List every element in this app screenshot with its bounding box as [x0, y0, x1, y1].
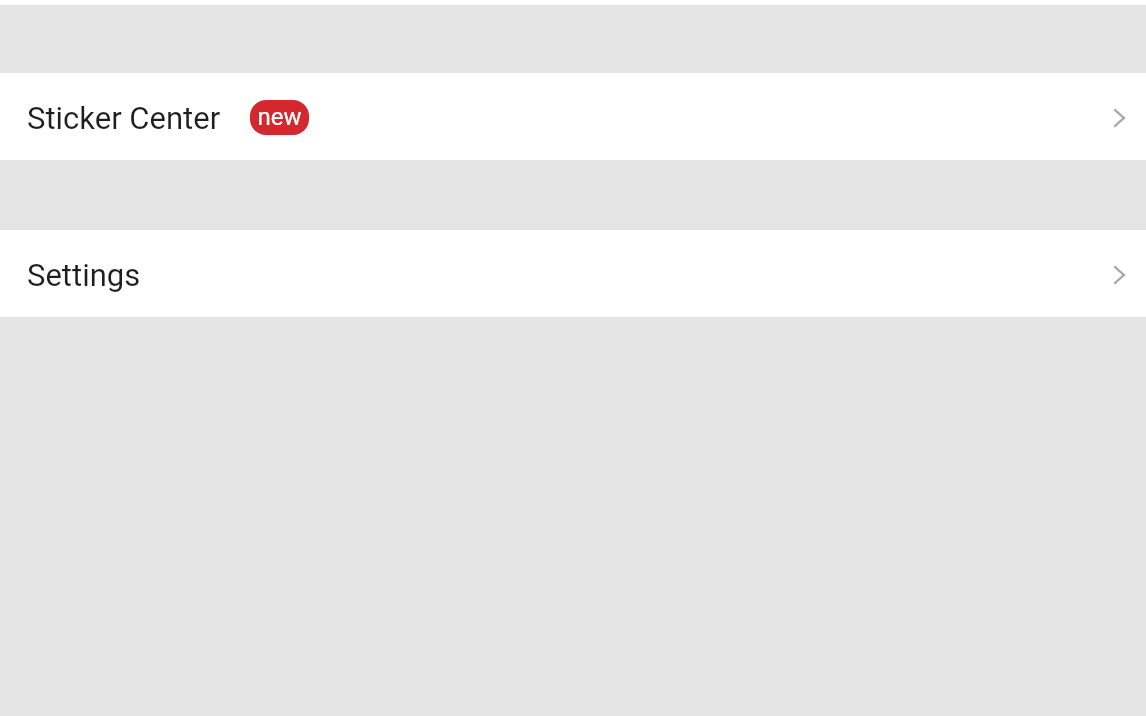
- button[interactable]: Sticker Center: [0, 73, 1146, 160]
- staticText: Sticker Center: [27, 100, 221, 136]
- staticText: new: [257, 103, 302, 131]
- staticText: Settings: [27, 257, 141, 293]
- other: Open Settings: [1107, 263, 1131, 287]
- other: Open Sticker Center: [1107, 106, 1131, 130]
- button[interactable]: Settings: [0, 230, 1146, 317]
